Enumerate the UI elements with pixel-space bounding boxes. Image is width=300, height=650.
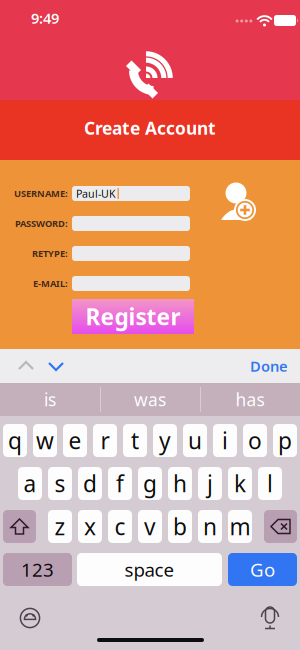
button[interactable]: e	[63, 424, 87, 457]
button[interactable]: Emoji keyboard	[17, 605, 43, 631]
staticText: l	[267, 468, 273, 498]
button[interactable]: m	[228, 510, 252, 543]
staticText: g	[143, 468, 157, 498]
staticText: k	[234, 468, 246, 498]
button[interactable]	[72, 216, 190, 231]
button[interactable]: Shift	[3, 510, 36, 543]
button[interactable]: Done	[234, 352, 288, 380]
button[interactable]: is	[0, 383, 100, 416]
staticText: Done	[250, 356, 288, 376]
staticText: PASSWORD:	[15, 217, 68, 230]
staticText: n	[203, 511, 217, 541]
button[interactable]: Previous field	[11, 352, 41, 380]
button[interactable]: Dictate	[256, 605, 282, 631]
button[interactable]: w	[33, 424, 57, 457]
button[interactable]: c	[108, 510, 132, 543]
staticText: was	[134, 388, 166, 411]
button[interactable]: p	[273, 424, 297, 457]
button[interactable]: n	[198, 510, 222, 543]
staticText: RETYPE:	[32, 247, 68, 260]
button[interactable]: d	[78, 467, 102, 500]
staticText: e	[68, 425, 81, 455]
staticText: has	[235, 388, 264, 411]
button[interactable]: was	[100, 383, 200, 416]
button[interactable]: Paul-UK	[72, 186, 190, 201]
button[interactable]: s	[48, 467, 72, 500]
staticText: r	[100, 425, 109, 455]
staticText: o	[248, 425, 262, 455]
button[interactable]: b	[168, 510, 192, 543]
button[interactable]: y	[153, 424, 177, 457]
button[interactable]: Register	[72, 299, 194, 334]
staticText: USERNAME:	[14, 187, 68, 200]
staticText: w	[36, 425, 54, 455]
button[interactable]: i	[213, 424, 237, 457]
button[interactable]: Go	[228, 553, 297, 586]
button[interactable]	[72, 276, 190, 291]
staticText: s	[54, 468, 65, 498]
staticText: space	[124, 557, 174, 582]
staticText: Paul-UK	[76, 186, 116, 201]
staticText: q	[8, 425, 22, 455]
button[interactable]: l	[258, 467, 282, 500]
staticText: b	[173, 511, 187, 541]
button[interactable]: Next field	[41, 352, 71, 380]
staticText: j	[207, 468, 213, 498]
staticText: x	[84, 511, 96, 541]
staticText: h	[173, 468, 187, 498]
staticText: u	[188, 425, 202, 455]
staticText: c	[114, 511, 125, 541]
staticText: d	[83, 468, 97, 498]
button[interactable]: f	[108, 467, 132, 500]
button[interactable]: g	[138, 467, 162, 500]
button[interactable]: q	[3, 424, 27, 457]
staticText: a	[23, 468, 36, 498]
staticText: Go	[250, 557, 275, 582]
button[interactable]: 123	[3, 553, 72, 586]
staticText: i	[222, 425, 228, 455]
staticText: is	[44, 388, 56, 411]
button[interactable]: j	[198, 467, 222, 500]
staticText: Register	[85, 301, 180, 331]
button[interactable]: Delete	[264, 510, 297, 543]
button[interactable]: o	[243, 424, 267, 457]
staticText: y	[159, 425, 171, 455]
button[interactable]: has	[200, 383, 300, 416]
staticText: E-MAIL:	[33, 277, 68, 290]
staticText: 123	[21, 557, 54, 582]
button[interactable]: h	[168, 467, 192, 500]
button[interactable]: k	[228, 467, 252, 500]
button[interactable]: r	[93, 424, 117, 457]
staticText: m	[229, 511, 250, 541]
staticText: Create Account	[84, 116, 216, 139]
button[interactable]: space	[77, 553, 222, 586]
button[interactable]: x	[78, 510, 102, 543]
button[interactable]: a	[18, 467, 42, 500]
staticText: z	[54, 511, 65, 541]
staticText: t	[131, 425, 139, 455]
button[interactable]: v	[138, 510, 162, 543]
button[interactable]	[72, 246, 190, 261]
staticText: 9:49	[31, 8, 59, 28]
staticText: p	[278, 425, 292, 455]
button[interactable]: u	[183, 424, 207, 457]
staticText: f	[116, 468, 124, 498]
button[interactable]: t	[123, 424, 147, 457]
staticText: v	[144, 511, 156, 541]
button[interactable]: z	[48, 510, 72, 543]
